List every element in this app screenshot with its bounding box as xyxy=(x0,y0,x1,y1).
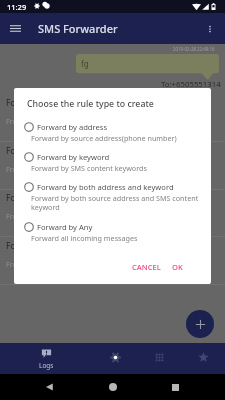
button[interactable]: Logs xyxy=(0,343,93,374)
button[interactable]: Open navigation drawer xyxy=(0,13,31,44)
staticText: Logs xyxy=(39,361,54,370)
staticText: SMS Forwarder xyxy=(38,21,118,36)
staticText: Forward by address xyxy=(6,192,85,204)
staticText: Forward by address xyxy=(37,122,108,132)
staticText: Forward by address xyxy=(6,97,85,109)
button[interactable]: Forward by Any xyxy=(14,214,211,244)
staticText: To:+6505551314 xyxy=(161,79,221,90)
staticText: Forward by Any xyxy=(37,222,93,232)
button[interactable]: Forward by address xyxy=(14,114,211,144)
staticText: Forward by address xyxy=(6,240,85,252)
staticText: CANCEL xyxy=(132,262,161,272)
button[interactable]: Forward by address xyxy=(0,97,225,144)
button[interactable]: Forward by keyword xyxy=(14,144,211,174)
staticText: From: any To: any xyxy=(6,260,68,270)
button[interactable]: Forward by address xyxy=(0,145,225,192)
staticText: Forward by source address(phone number) xyxy=(31,133,209,143)
button[interactable]: Rules xyxy=(137,343,181,374)
staticText: 2019-02-28 22:49:16 xyxy=(173,46,215,52)
button[interactable]: Settings xyxy=(93,343,137,374)
staticText: Forward by SMS content keywords xyxy=(31,163,209,173)
staticText: OK xyxy=(172,262,183,272)
button[interactable]: Add rule xyxy=(186,310,214,338)
button[interactable]: OK xyxy=(166,260,188,274)
button[interactable]: Favourites xyxy=(181,343,225,374)
button[interactable]: Forward by both address and keyword xyxy=(14,174,211,204)
staticText: Forward by both source address and SMS c… xyxy=(31,193,209,212)
staticText: Choose the rule type to create xyxy=(27,98,154,110)
button[interactable]: Forward by address xyxy=(0,192,225,239)
button[interactable]: More options xyxy=(194,13,225,44)
button[interactable]: Home xyxy=(101,375,125,399)
staticText: 11:29 xyxy=(7,2,27,12)
staticText: From: any To: any xyxy=(6,212,68,222)
staticText: Forward by both address and keyword xyxy=(37,182,174,192)
staticText: From: any To: any xyxy=(6,165,68,175)
staticText: From: any To: any xyxy=(6,117,68,127)
staticText: Forward all incoming messages xyxy=(31,233,209,243)
staticText: Forward by address xyxy=(6,145,85,157)
button[interactable]: Forward by address xyxy=(0,240,225,287)
button[interactable]: Back xyxy=(38,375,62,399)
staticText: Forward by keyword xyxy=(37,152,110,162)
staticText: fg xyxy=(81,58,89,69)
button[interactable]: Recent apps xyxy=(163,375,187,399)
button[interactable]: CANCEL xyxy=(129,260,163,274)
